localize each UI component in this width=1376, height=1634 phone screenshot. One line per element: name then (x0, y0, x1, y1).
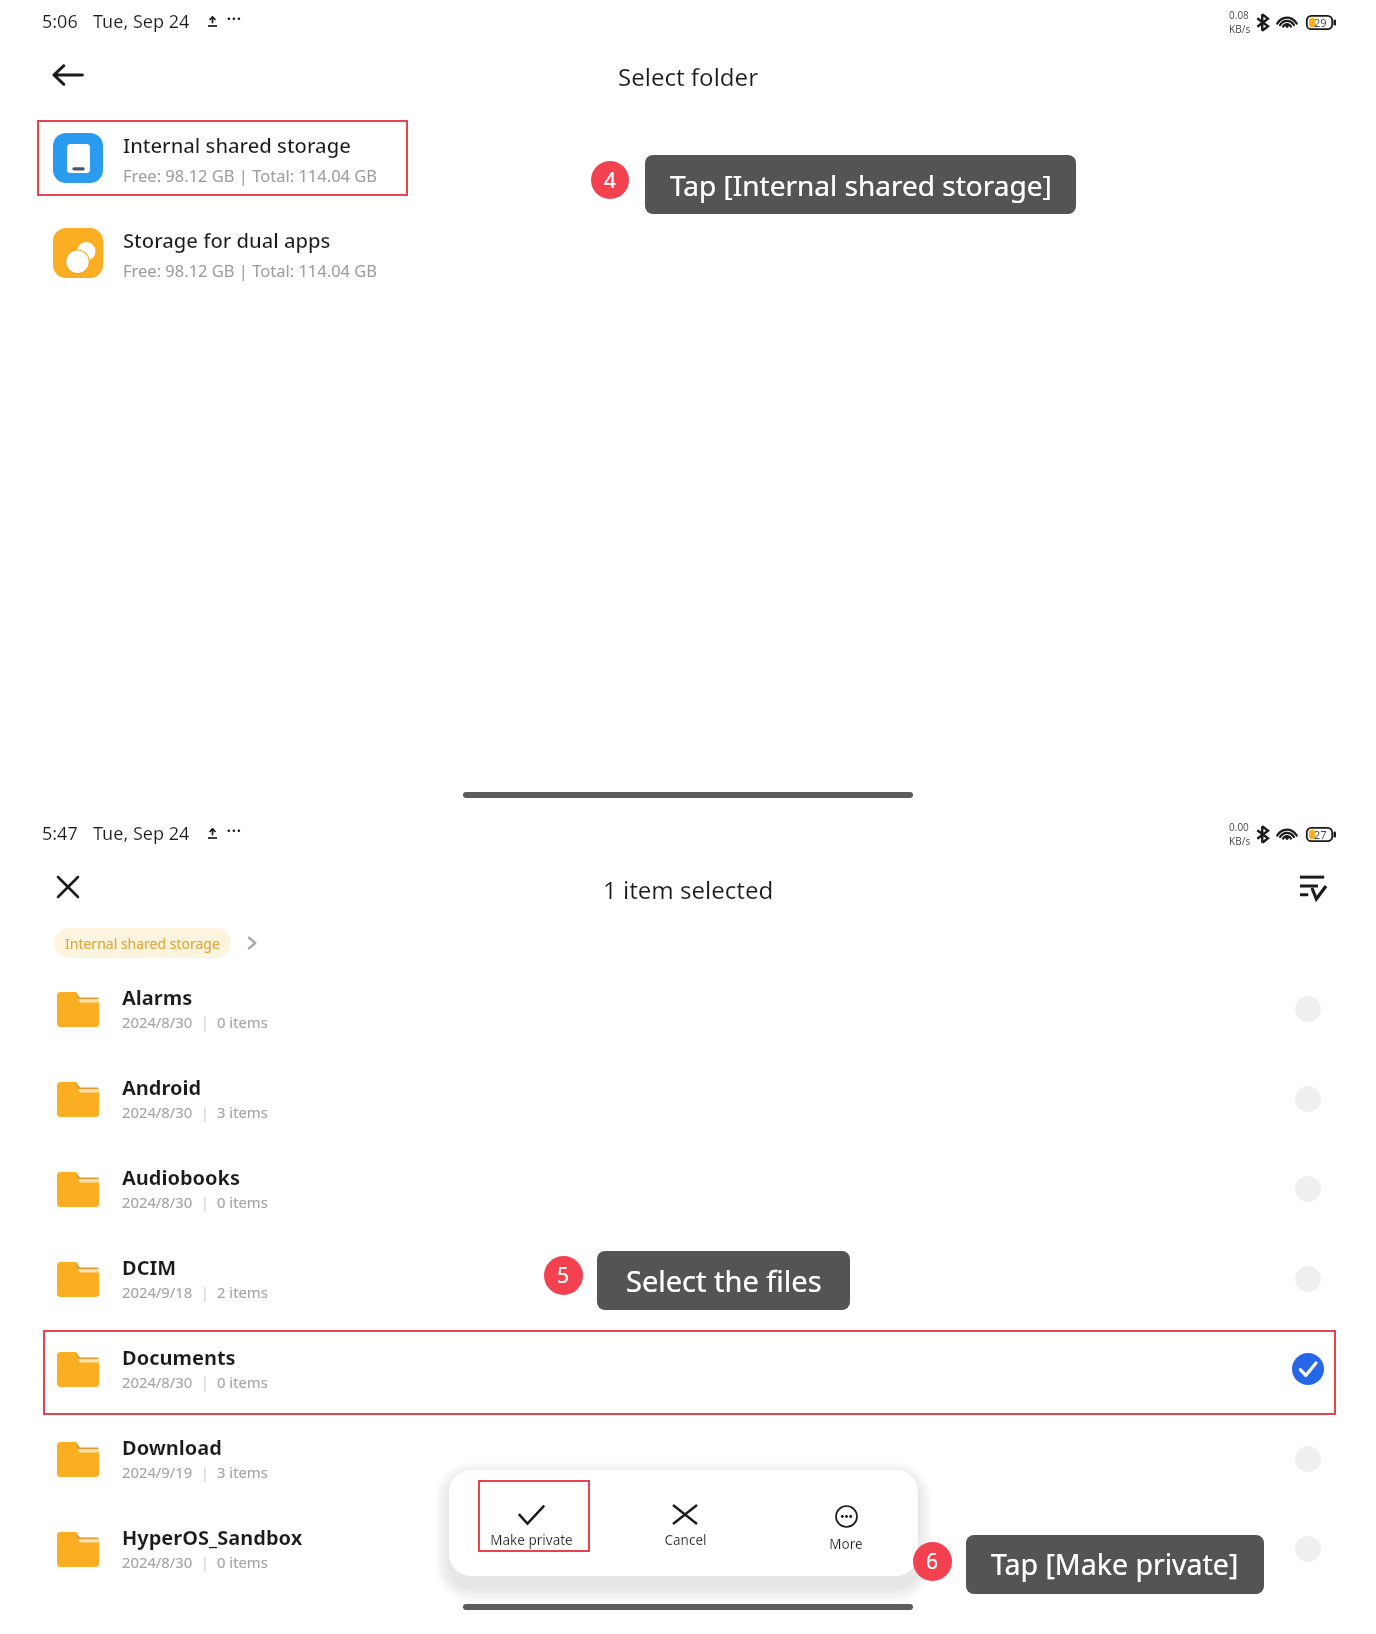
button[interactable]: Back (38, 45, 98, 105)
staticText: Documents (122, 1344, 236, 1371)
button[interactable]: DCIM (0, 1244, 1376, 1314)
staticText: 3 items (217, 1102, 268, 1122)
staticText: Free: 98.12 GB | Total: 114.04 GB (123, 259, 378, 281)
staticText: KB/s (1229, 834, 1251, 848)
button[interactable]: Tap [Make private] (966, 1535, 1264, 1594)
staticText: | (193, 1102, 217, 1122)
staticText: Tap [Internal shared storage] (670, 166, 1052, 204)
button[interactable]: More (782, 1480, 910, 1566)
staticText: 0.08 (1229, 8, 1249, 22)
staticText: Free: 98.12 GB | Total: 114.04 GB (123, 164, 378, 186)
button[interactable]: Internal shared storage (37, 120, 457, 196)
staticText: 6 (926, 1547, 939, 1576)
staticText: 2024/8/30 (122, 1012, 193, 1032)
staticText: 4 (604, 166, 617, 195)
staticText: DCIM (122, 1254, 177, 1281)
staticText: 2024/9/18 (122, 1282, 193, 1302)
staticText: KB/s (1229, 22, 1251, 36)
staticText: Storage for dual apps (123, 226, 331, 254)
button[interactable]: Storage for dual apps (37, 215, 457, 291)
button[interactable]: HyperOS_Sandbox (0, 1514, 1376, 1584)
staticText: | (193, 1372, 217, 1392)
staticText: 2024/8/30 (122, 1192, 193, 1212)
staticText: Tap [Make private] (991, 1545, 1239, 1584)
button[interactable]: Android (0, 1064, 1376, 1134)
staticText: Internal shared storage (123, 131, 351, 159)
button[interactable]: Make private (467, 1480, 595, 1566)
staticText: More (829, 1535, 863, 1553)
staticText: 0 items (217, 1012, 268, 1032)
staticText: Tue, Sep 24 (93, 9, 190, 34)
button[interactable]: Documents (0, 1334, 1376, 1404)
staticText: | (193, 1552, 217, 1572)
staticText: HyperOS_Sandbox (122, 1524, 303, 1551)
staticText: Download (122, 1434, 222, 1461)
staticText: Alarms (122, 984, 193, 1011)
button[interactable]: Tap [Internal shared storage] (645, 155, 1076, 214)
staticText: 29 (1314, 15, 1327, 30)
button[interactable]: Download (0, 1424, 1376, 1494)
button[interactable]: Select the files (597, 1251, 850, 1310)
staticText: 2 items (217, 1282, 268, 1302)
staticText: 2024/8/30 (122, 1372, 193, 1392)
button[interactable]: Alarms (0, 974, 1376, 1044)
staticText: 0 items (217, 1372, 268, 1392)
staticText: Make private (490, 1531, 573, 1549)
staticText: Internal shared storage (65, 934, 220, 953)
staticText: 5:06 (42, 9, 78, 34)
button[interactable]: Internal shared storage (54, 928, 231, 958)
button[interactable]: Close (38, 857, 98, 917)
staticText: Tue, Sep 24 (93, 821, 190, 846)
staticText: | (193, 1012, 217, 1032)
staticText: | (193, 1282, 217, 1302)
staticText: Select folder (618, 60, 759, 93)
staticText: 0.00 (1229, 820, 1249, 834)
staticText: Audiobooks (122, 1164, 241, 1191)
staticText: Cancel (664, 1531, 707, 1549)
staticText: 27 (1314, 827, 1327, 842)
staticText: 0 items (217, 1192, 268, 1212)
staticText: | (193, 1462, 217, 1482)
staticText: Android (122, 1074, 202, 1101)
button[interactable]: Audiobooks (0, 1154, 1376, 1224)
staticText: 3 items (217, 1462, 268, 1482)
staticText: Select the files (626, 1261, 822, 1300)
button[interactable]: Cancel (621, 1480, 749, 1566)
staticText: 1 item selected (603, 873, 774, 906)
staticText: 0 items (217, 1552, 268, 1572)
staticText: | (193, 1192, 217, 1212)
staticText: 2024/8/30 (122, 1552, 193, 1572)
staticText: 2024/9/19 (122, 1462, 193, 1482)
staticText: 5:47 (42, 821, 78, 846)
button[interactable]: Select all (1283, 857, 1343, 917)
staticText: 2024/8/30 (122, 1102, 193, 1122)
staticText: 5 (557, 1261, 570, 1290)
